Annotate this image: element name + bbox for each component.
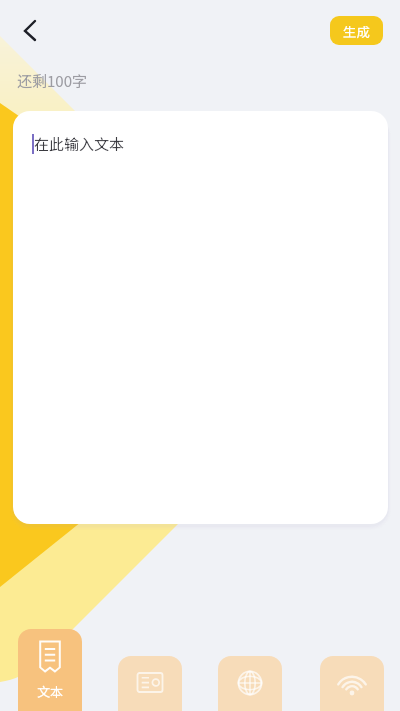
staticText: 文本: [37, 682, 64, 701]
staticText: 生成: [343, 21, 370, 41]
button[interactable]: Back: [12, 14, 48, 50]
button[interactable]: Web: [218, 656, 282, 711]
button[interactable]: Text: [18, 629, 82, 711]
staticText: 还剩100字: [17, 70, 87, 92]
button[interactable]: 在此输入文本: [13, 111, 388, 524]
button[interactable]: WiFi: [320, 656, 384, 711]
button[interactable]: 生成: [330, 16, 383, 45]
button[interactable]: Card: [118, 656, 182, 711]
staticText: 在此输入文本: [34, 133, 125, 155]
